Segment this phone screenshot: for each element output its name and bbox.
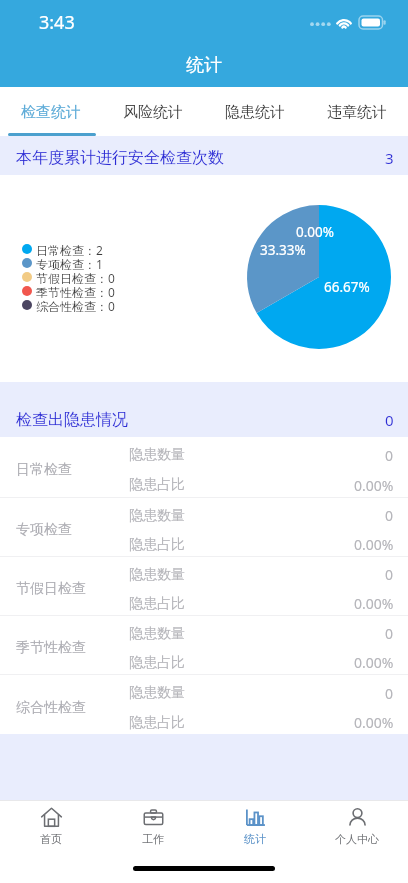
staticText: 隐患占比 bbox=[129, 595, 185, 613]
button[interactable]: 隐患统计 bbox=[204, 87, 306, 136]
staticText: 隐患数量 bbox=[129, 684, 185, 702]
staticText: 季节性检查 bbox=[16, 639, 86, 657]
staticText: 违章统计 bbox=[327, 103, 387, 122]
staticText: 隐患数量 bbox=[129, 566, 185, 584]
staticText: 0.00% bbox=[354, 535, 394, 554]
staticText: 风险统计 bbox=[123, 103, 183, 122]
staticText: 隐患数量 bbox=[129, 507, 185, 525]
staticText: 节假日检查 bbox=[16, 580, 86, 598]
staticText: 0.00% bbox=[296, 223, 335, 241]
staticText: 0 bbox=[385, 410, 394, 430]
staticText: 0 bbox=[385, 565, 394, 584]
staticText: 统计 bbox=[186, 54, 222, 77]
staticText: 综合性检查：0 bbox=[36, 298, 115, 312]
staticText: 隐患统计 bbox=[225, 103, 285, 122]
staticText: 统计 bbox=[244, 832, 266, 846]
staticText: 个人中心 bbox=[335, 832, 379, 846]
staticText: 日常检查 bbox=[16, 461, 72, 479]
staticText: 0 bbox=[385, 684, 394, 703]
staticText: 专项检查 bbox=[16, 521, 72, 539]
button[interactable]: 工作 bbox=[102, 800, 204, 855]
staticText: 3 bbox=[385, 148, 394, 168]
staticText: 综合性检查 bbox=[16, 699, 86, 717]
button[interactable]: 首页 bbox=[0, 800, 102, 855]
staticText: 隐患数量 bbox=[129, 446, 185, 464]
staticText: 日常检查：2 bbox=[36, 242, 103, 256]
staticText: 3:43 bbox=[39, 10, 75, 35]
staticText: 隐患占比 bbox=[129, 714, 185, 732]
staticText: 隐患占比 bbox=[129, 654, 185, 672]
staticText: 季节性检查：0 bbox=[36, 284, 115, 298]
staticText: 工作 bbox=[142, 832, 164, 846]
button[interactable]: 检查统计 bbox=[0, 87, 102, 136]
staticText: 隐患占比 bbox=[129, 476, 185, 494]
staticText: 0.00% bbox=[354, 653, 394, 672]
staticText: 检查出隐患情况 bbox=[16, 410, 128, 430]
staticText: 专项检查：1 bbox=[36, 256, 103, 270]
staticText: 首页 bbox=[40, 832, 62, 846]
staticText: 0.00% bbox=[354, 594, 394, 613]
staticText: 隐患占比 bbox=[129, 536, 185, 554]
button[interactable]: 统计 bbox=[204, 800, 306, 855]
staticText: 33.33% bbox=[260, 241, 306, 259]
staticText: 0.00% bbox=[354, 713, 394, 732]
staticText: 本年度累计进行安全检查次数 bbox=[16, 148, 224, 168]
button[interactable]: 个人中心 bbox=[306, 800, 408, 855]
staticText: 0 bbox=[385, 506, 394, 525]
button[interactable]: 风险统计 bbox=[102, 87, 204, 136]
staticText: 检查统计 bbox=[21, 103, 81, 122]
staticText: 66.67% bbox=[324, 278, 370, 296]
staticText: 0 bbox=[385, 624, 394, 643]
staticText: 节假日检查：0 bbox=[36, 270, 115, 284]
staticText: 隐患数量 bbox=[129, 625, 185, 643]
staticText: 0.00% bbox=[354, 476, 394, 495]
button[interactable]: 违章统计 bbox=[306, 87, 408, 136]
staticText: 0 bbox=[385, 446, 394, 465]
